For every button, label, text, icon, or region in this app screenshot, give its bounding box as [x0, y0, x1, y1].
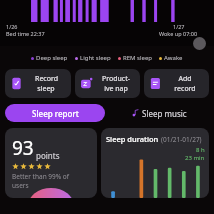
button[interactable]: Sleep music [109, 104, 209, 122]
staticText: users [12, 181, 29, 190]
staticText: (01/21-01/27) [161, 135, 202, 144]
staticText: ive nap [104, 84, 128, 94]
staticText: 23 min [185, 154, 205, 162]
button[interactable]: More [193, 37, 206, 50]
staticText: 8 h [196, 146, 205, 154]
staticText: Record [35, 74, 58, 84]
staticText: points [36, 150, 60, 161]
button[interactable]: Add [144, 69, 209, 98]
staticText: Light sleep [80, 54, 111, 62]
button[interactable]: Sleep report [5, 104, 105, 122]
staticText: Better than 99% of [12, 172, 70, 181]
staticText: Sleep duration [106, 134, 159, 144]
staticText: Bed time 22:37 [6, 30, 45, 37]
staticText: sleep [37, 84, 55, 94]
staticText: Sleep music [142, 108, 187, 119]
button[interactable]: Product- [75, 69, 140, 98]
button[interactable]: 93 [5, 128, 97, 198]
staticText: REM sleep [123, 54, 152, 62]
staticText: 1/26 [6, 23, 18, 30]
staticText: Deep sleep [36, 54, 68, 62]
staticText: Sleep report [32, 108, 79, 119]
staticText: 1/27 [173, 23, 185, 30]
staticText: Product- [102, 74, 130, 84]
staticText: Awake [164, 54, 183, 62]
button[interactable]: Sleep duration [101, 128, 209, 198]
staticText: 93 [12, 135, 34, 161]
staticText: Add [178, 74, 192, 84]
staticText: record [174, 84, 196, 94]
button[interactable]: Record [5, 69, 71, 98]
staticText: Woke up 07:00 [159, 30, 198, 37]
